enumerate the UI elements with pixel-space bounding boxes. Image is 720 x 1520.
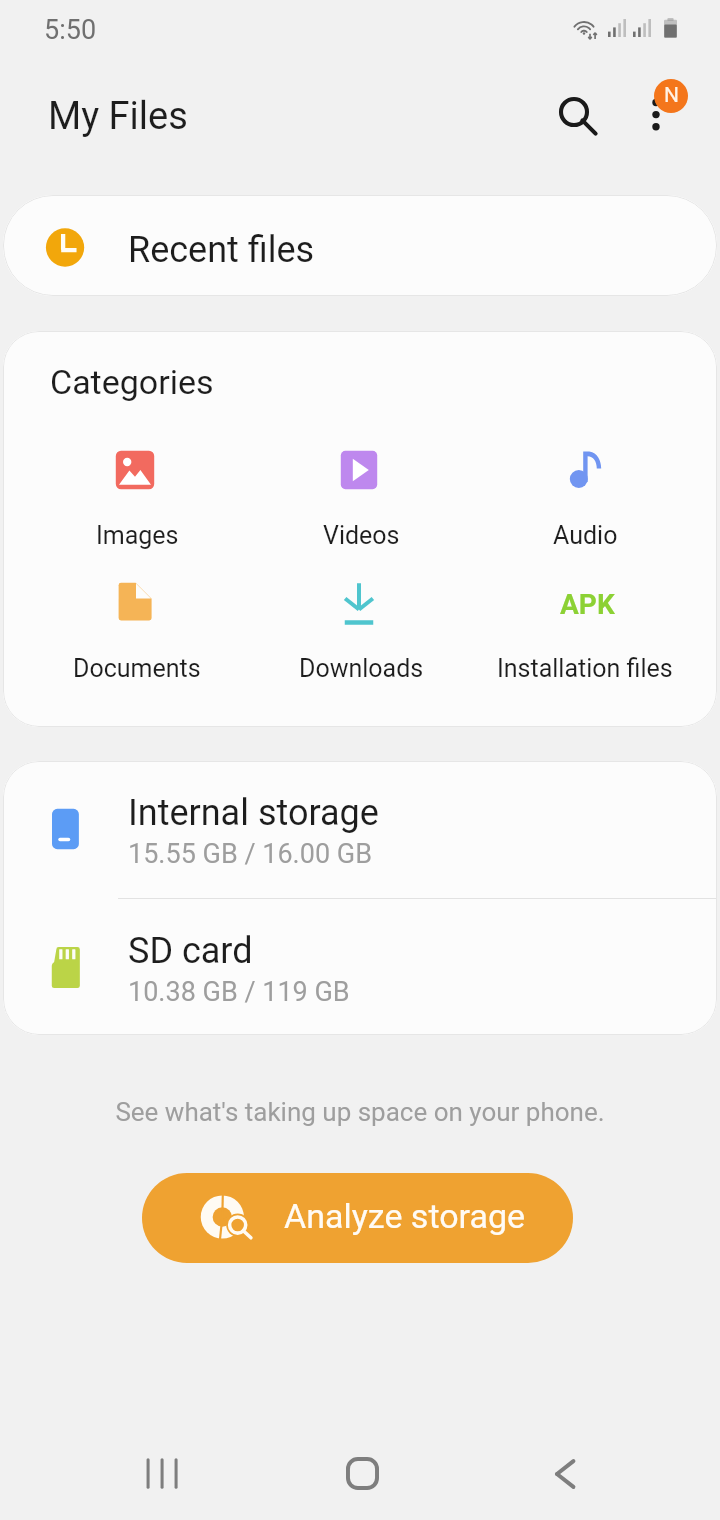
staticText: 5:50 [44,14,97,46]
button[interactable]: SD card [3,929,717,1035]
staticText: Images [96,521,179,550]
button[interactable]: Back [523,1416,603,1520]
staticText: 10.38 GB / 119 GB [128,976,350,1008]
staticText: Categories [50,362,214,402]
button[interactable]: Analyze storage [142,1173,573,1263]
button[interactable]: Home [323,1416,403,1520]
staticText: Analyze storage [284,1196,526,1236]
staticText: See what's taking up space on your phone… [0,1097,720,1127]
button[interactable]: More options [616,74,696,154]
button[interactable]: Images [32,440,240,544]
staticText: SD card [128,930,253,972]
button[interactable]: Videos [256,440,464,544]
button[interactable]: APK [480,572,688,676]
button[interactable]: Internal storage [3,791,717,928]
staticText: APK [560,588,615,621]
button[interactable]: Search [538,76,618,156]
staticText: Installation files [497,654,673,683]
staticText: My Files [48,94,188,139]
button[interactable]: Downloads [256,572,464,676]
button[interactable]: Recent apps [122,1416,202,1520]
staticText: 15.55 GB / 16.00 GB [128,838,372,870]
staticText: Documents [73,654,201,683]
staticText: Audio [553,521,618,550]
staticText: Videos [323,521,400,550]
button[interactable]: Audio [480,440,688,544]
button[interactable]: Documents [32,572,240,676]
staticText: Recent files [128,229,315,271]
staticText: N [664,83,679,108]
staticText: Internal storage [128,792,379,834]
button[interactable]: Recent files [3,195,717,296]
staticText: Downloads [299,654,424,683]
